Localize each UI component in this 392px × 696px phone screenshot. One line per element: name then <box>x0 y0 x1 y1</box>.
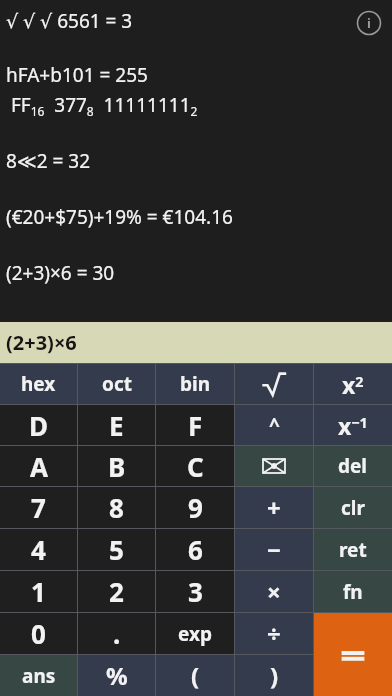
staticText: x2 <box>342 369 364 400</box>
button[interactable]: bin <box>156 364 234 404</box>
staticText: oct <box>102 371 132 397</box>
button[interactable]: clr <box>314 487 392 528</box>
button[interactable]: ^ <box>235 405 313 445</box>
button[interactable]: 4 <box>0 529 77 570</box>
staticText: √ √ √ 6561 = 3 <box>6 8 133 34</box>
button[interactable]: 8 <box>78 487 155 528</box>
button[interactable]: Backspace <box>235 446 313 486</box>
staticText: 3 <box>188 574 203 609</box>
staticText: 4 <box>31 532 46 567</box>
staticText: ( <box>191 659 200 692</box>
button[interactable]: 1 <box>0 571 77 612</box>
staticText: clr <box>341 495 365 521</box>
button[interactable]: F <box>156 405 234 445</box>
staticText: hFA+b101 = 255 <box>6 62 148 88</box>
button[interactable]: exp <box>156 613 234 654</box>
staticText: % <box>106 659 128 692</box>
staticText: ret <box>339 537 367 563</box>
button[interactable]: + <box>235 487 313 528</box>
button[interactable]: hex <box>0 364 77 404</box>
staticText: B <box>108 449 126 484</box>
staticText: 5 <box>109 532 124 567</box>
staticText: (€20+$75)+19% = €104.16 <box>6 204 233 230</box>
staticText: 8≪2 = 32 <box>6 148 91 174</box>
button[interactable]: 2 <box>78 571 155 612</box>
button[interactable]: x−1 <box>314 405 392 445</box>
staticText: (2+3)×6 = 30 <box>6 260 115 286</box>
button[interactable]: A <box>0 446 77 486</box>
button[interactable]: D <box>0 405 77 445</box>
staticText: hex <box>21 371 56 397</box>
staticText: x−1 <box>338 410 368 441</box>
staticText: × <box>267 575 281 608</box>
button[interactable]: Square root <box>235 364 313 404</box>
staticText: 8 <box>109 490 124 525</box>
staticText: E <box>109 408 124 443</box>
button[interactable]: × <box>235 571 313 612</box>
staticText: ^ <box>269 412 280 438</box>
button[interactable]: 7 <box>0 487 77 528</box>
staticText: 2 <box>109 574 124 609</box>
button[interactable]: ) <box>235 655 313 696</box>
staticText: . <box>113 616 121 651</box>
button[interactable]: fn <box>314 571 392 612</box>
staticText: C <box>187 449 204 484</box>
staticText: i <box>367 14 371 32</box>
button[interactable]: B <box>78 446 155 486</box>
staticText: 9 <box>188 490 203 525</box>
button[interactable]: oct <box>78 364 155 404</box>
button[interactable]: Equals <box>314 613 392 696</box>
staticText: 0 <box>31 616 46 651</box>
staticText: ÷ <box>267 617 281 650</box>
button[interactable]: del <box>314 446 392 486</box>
button[interactable]: x2 <box>314 364 392 404</box>
button[interactable]: ans <box>0 655 77 696</box>
staticText: + <box>267 491 281 524</box>
button[interactable]: ÷ <box>235 613 313 654</box>
button[interactable]: 0 <box>0 613 77 654</box>
staticText: F <box>188 408 203 443</box>
staticText: − <box>267 533 281 566</box>
button[interactable]: C <box>156 446 234 486</box>
button[interactable]: ret <box>314 529 392 570</box>
button[interactable]: − <box>235 529 313 570</box>
button[interactable]: 3 <box>156 571 234 612</box>
button[interactable]: % <box>78 655 155 696</box>
staticText: exp <box>178 621 212 647</box>
button[interactable]: 5 <box>78 529 155 570</box>
staticText: bin <box>180 371 211 397</box>
staticText: del <box>338 453 368 479</box>
button[interactable]: . <box>78 613 155 654</box>
staticText: 1 <box>31 574 46 609</box>
staticText: (2+3)×6 <box>6 329 77 356</box>
button[interactable]: Info <box>356 10 382 36</box>
staticText: fn <box>343 579 363 605</box>
staticText: A <box>30 449 48 484</box>
button[interactable]: E <box>78 405 155 445</box>
button[interactable]: 6 <box>156 529 234 570</box>
staticText: ) <box>270 659 279 692</box>
staticText: 7 <box>31 490 46 525</box>
staticText: FF16 3778 111111112 <box>6 92 198 120</box>
staticText: ans <box>22 663 56 689</box>
staticText: 6 <box>188 532 203 567</box>
button[interactable]: (2+3)×6 <box>0 322 392 363</box>
button[interactable]: 9 <box>156 487 234 528</box>
staticText: D <box>29 408 49 443</box>
button[interactable]: ( <box>156 655 234 696</box>
